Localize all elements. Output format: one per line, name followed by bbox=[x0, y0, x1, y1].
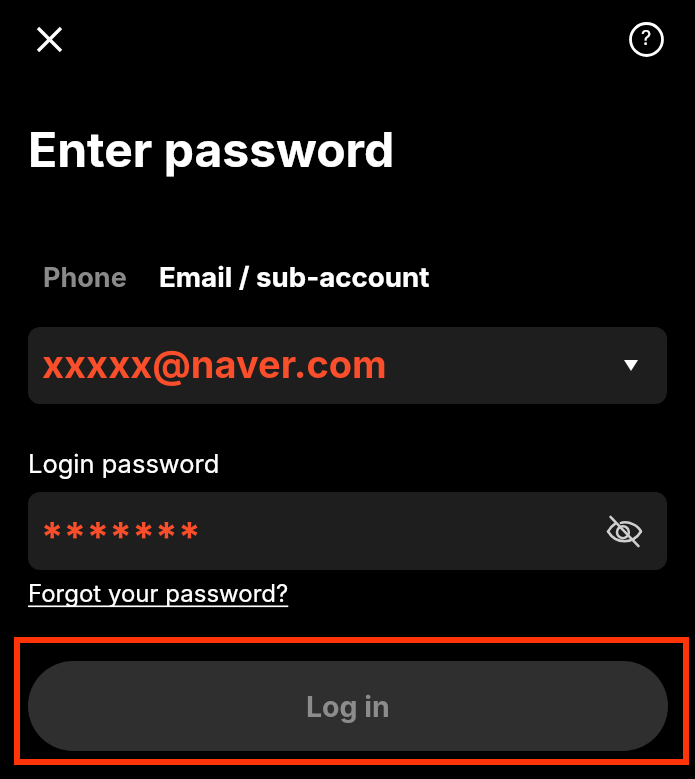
staticText: ******* bbox=[41, 512, 202, 560]
staticText: Enter password bbox=[28, 120, 395, 178]
button[interactable]: ******* bbox=[28, 492, 667, 570]
button[interactable]: Email / sub-account bbox=[159, 260, 430, 294]
button[interactable]: Forgot your password? bbox=[28, 579, 289, 608]
button[interactable]: Help bbox=[623, 16, 669, 62]
button[interactable]: Phone bbox=[43, 261, 127, 294]
staticText: Phone bbox=[43, 261, 127, 294]
button[interactable]: Log in bbox=[28, 661, 668, 751]
staticText: Login password bbox=[28, 448, 220, 479]
staticText: Forgot your password? bbox=[28, 579, 289, 608]
button[interactable]: Close bbox=[26, 16, 73, 63]
staticText: xxxxx@naver.com bbox=[42, 341, 387, 387]
staticText: ? bbox=[641, 26, 652, 50]
button[interactable]: xxxxx@naver.com bbox=[28, 327, 667, 404]
button[interactable]: Show password bbox=[601, 508, 647, 554]
staticText: Log in bbox=[306, 689, 390, 723]
staticText: Email / sub-account bbox=[159, 260, 430, 294]
